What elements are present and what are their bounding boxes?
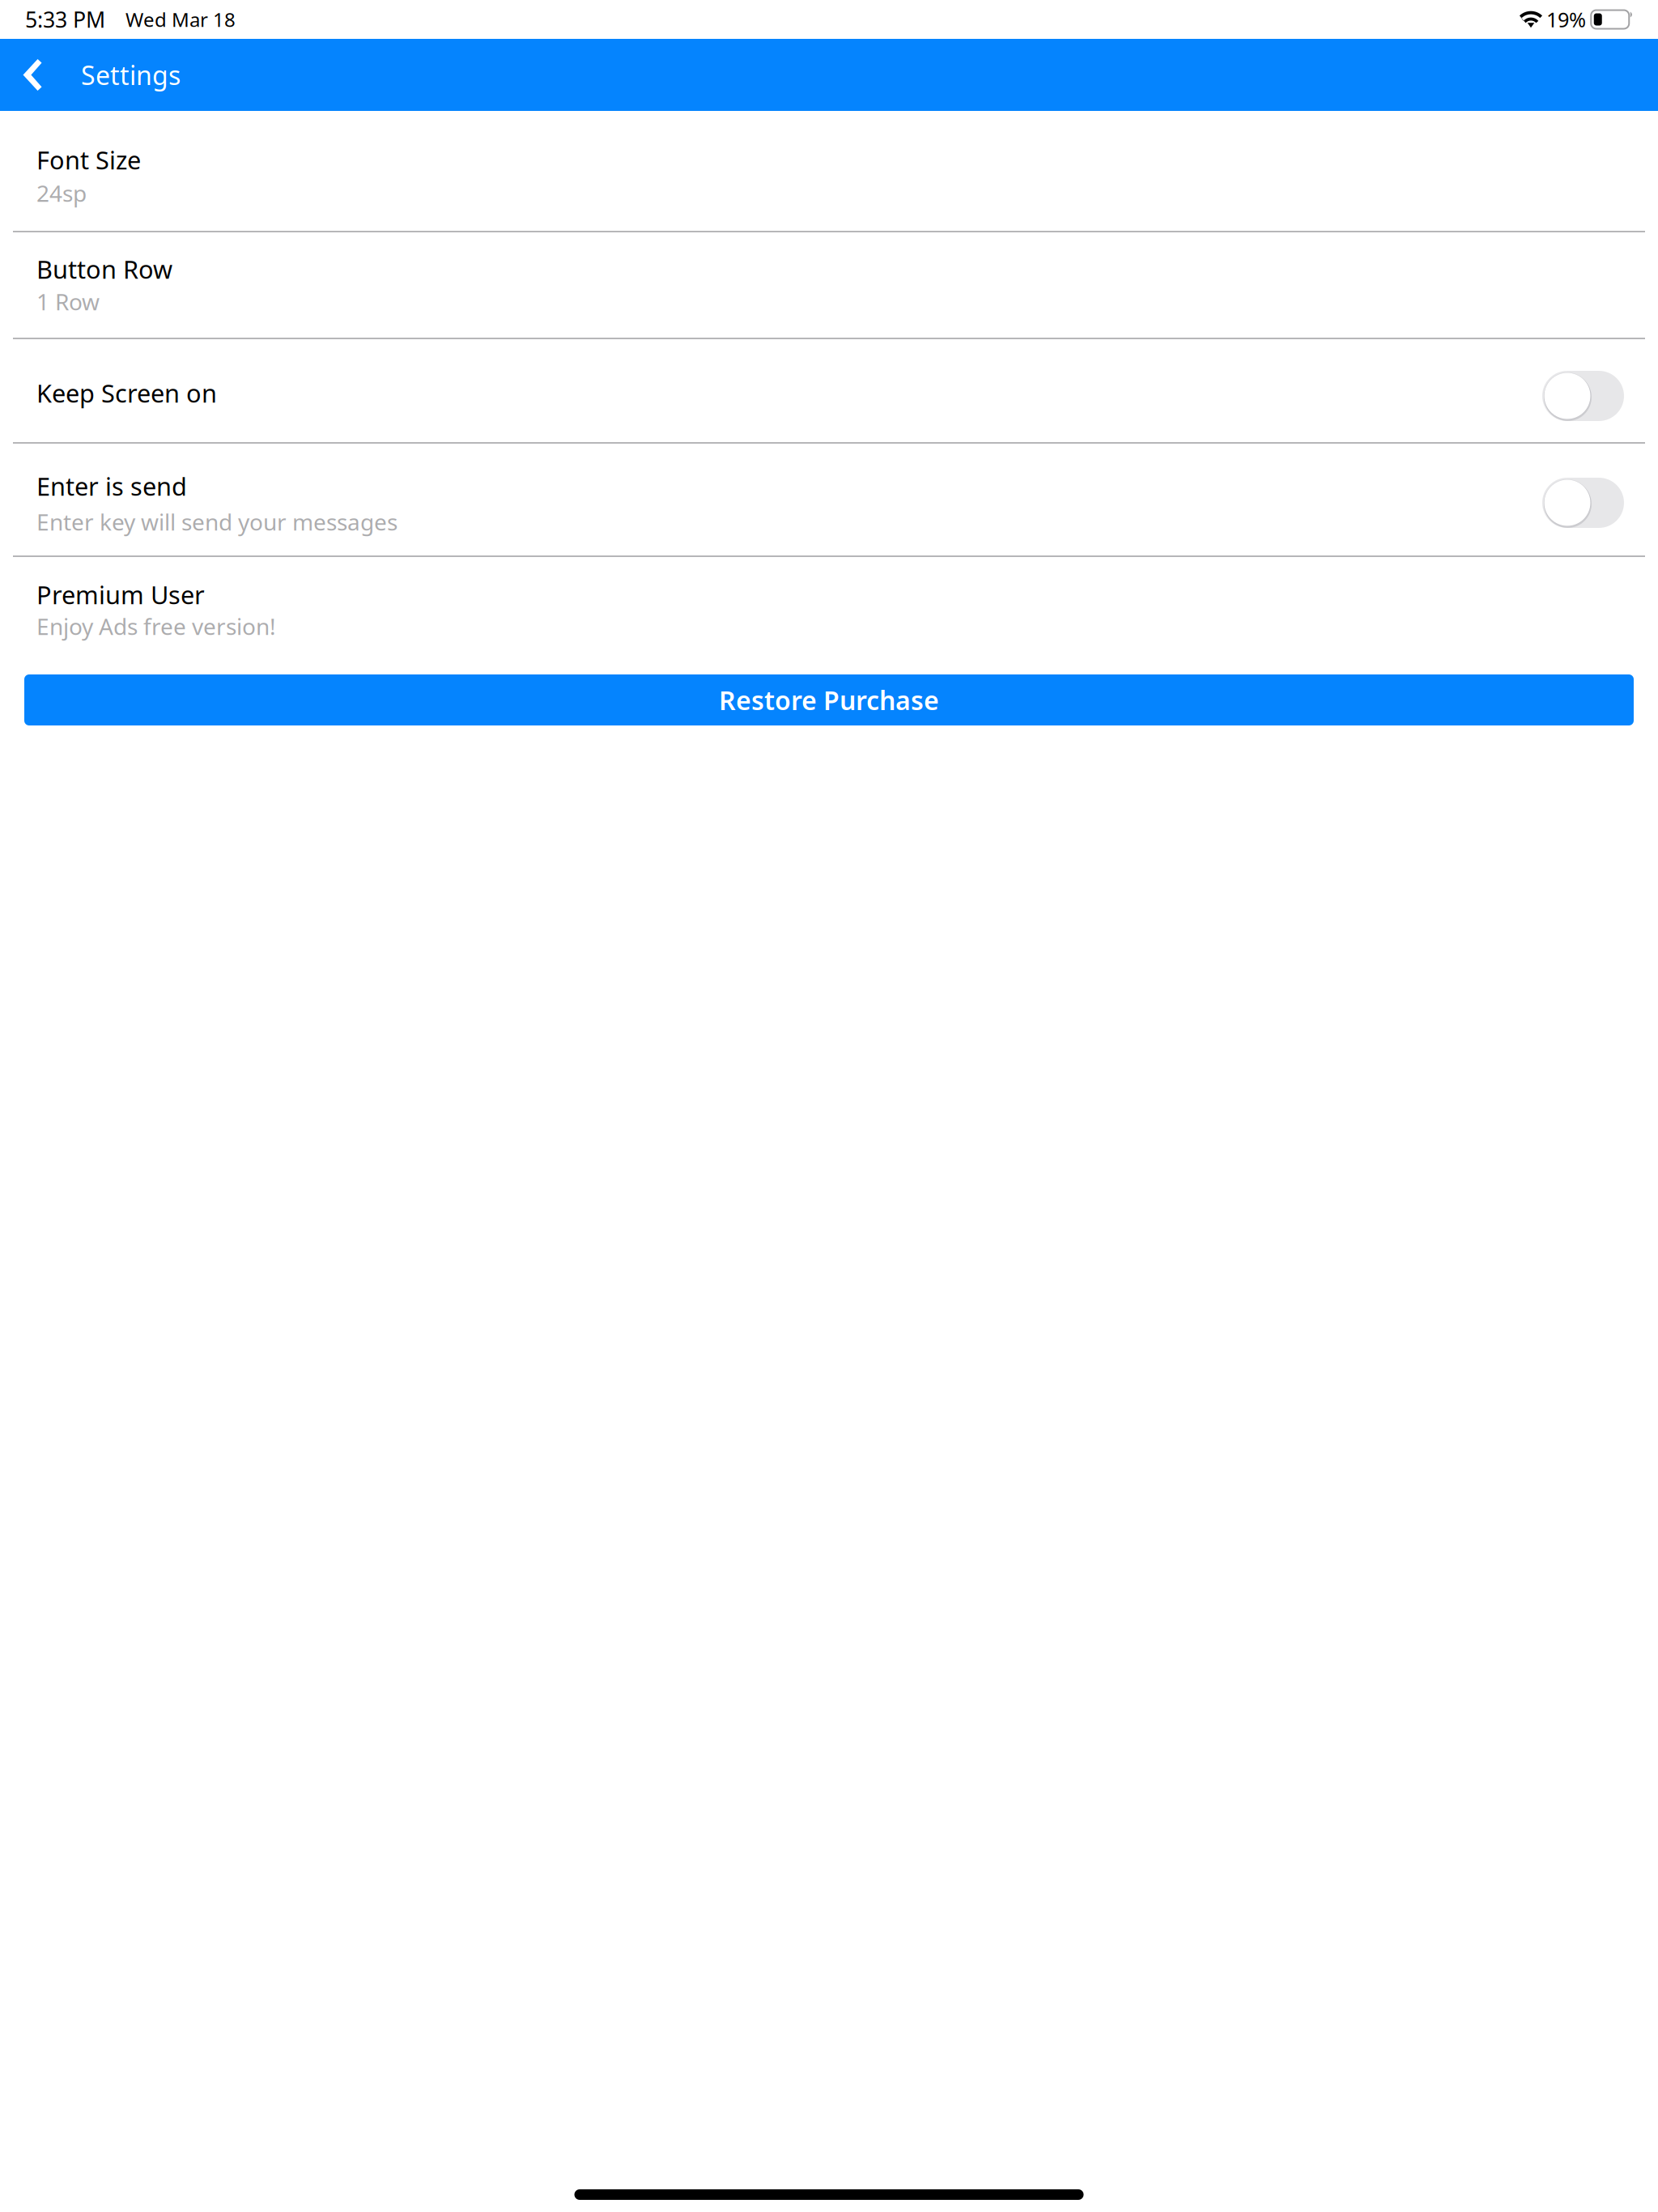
staticText: Keep Screen on <box>36 376 217 409</box>
button[interactable]: Button Row <box>0 232 1658 338</box>
staticText: Wed Mar 18 <box>125 7 236 32</box>
staticText: Premium User <box>36 578 205 611</box>
button[interactable]: Font Size <box>0 111 1658 231</box>
staticText: Enjoy Ads free version! <box>36 611 276 641</box>
staticText: Enter key will send your messages <box>36 507 397 537</box>
button[interactable]: Back <box>2 39 62 111</box>
staticText: 19% <box>1546 6 1586 33</box>
staticText: Settings <box>81 58 181 92</box>
staticText: Restore Purchase <box>719 683 939 717</box>
button[interactable]: Restore Purchase <box>24 674 1634 725</box>
button[interactable]: Enter is send <box>0 444 1658 555</box>
staticText: Font Size <box>36 143 141 176</box>
staticText: Button Row <box>36 253 172 286</box>
staticText: Enter is send <box>36 470 187 503</box>
staticText: 24sp <box>36 178 87 208</box>
button[interactable]: Keep Screen on <box>0 339 1658 442</box>
staticText: 5:33 PM <box>25 5 105 34</box>
button[interactable]: Premium User <box>0 557 1658 674</box>
staticText: 1 Row <box>36 286 100 316</box>
